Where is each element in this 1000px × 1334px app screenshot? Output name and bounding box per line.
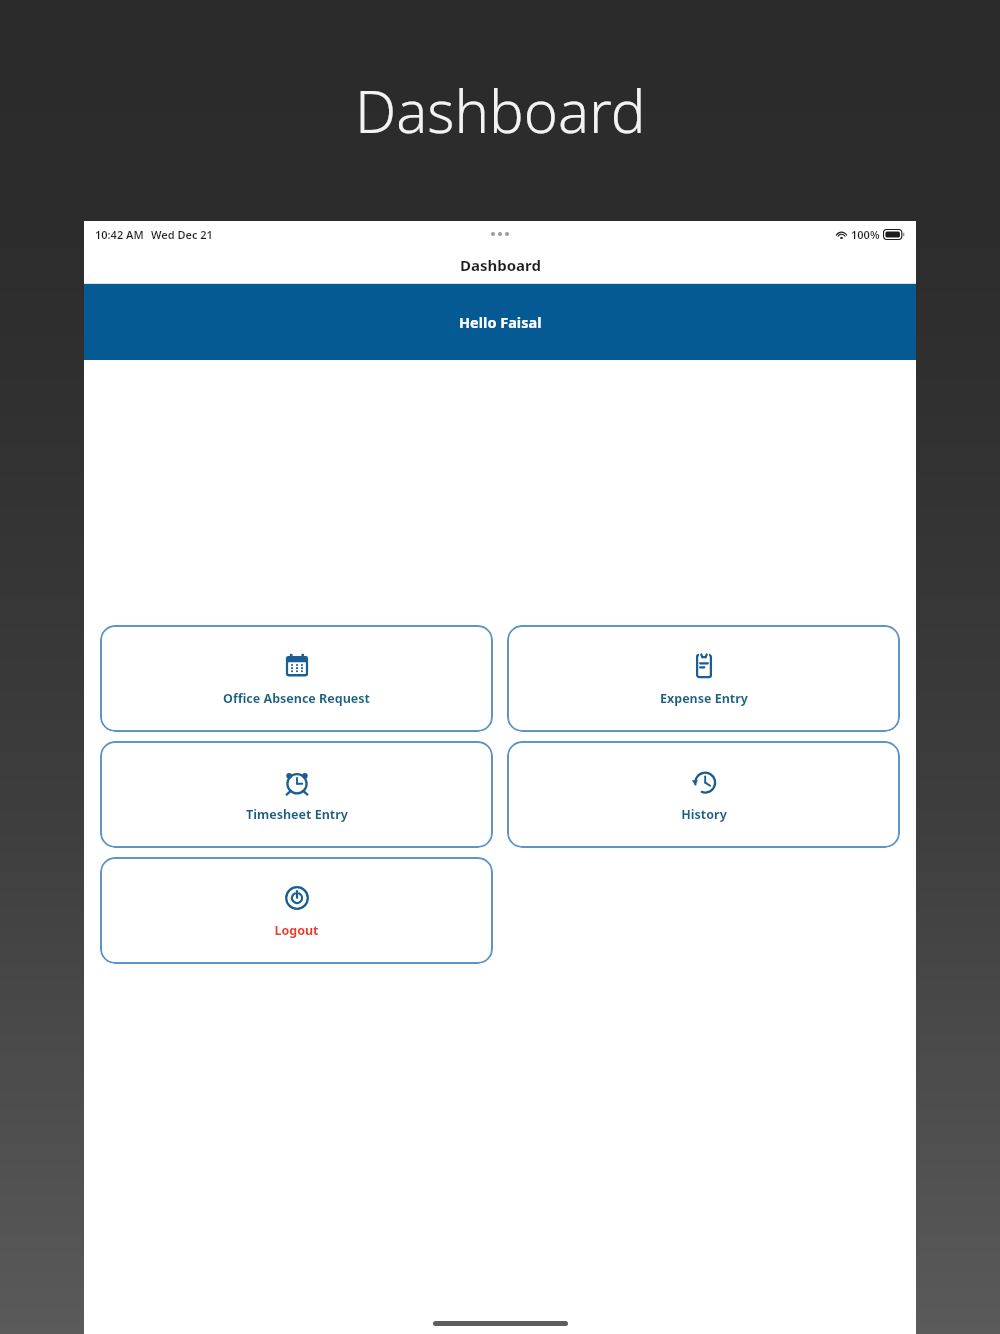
staticText: 10:42 AM	[95, 227, 144, 242]
staticText: Office Absence Request	[223, 690, 370, 707]
staticText: Timesheet Entry	[246, 806, 348, 823]
staticText: Logout	[274, 922, 319, 939]
button[interactable]: Hello Faisal	[84, 284, 916, 360]
staticText: 100%	[851, 227, 880, 242]
staticText: Hello Faisal	[459, 312, 542, 332]
button[interactable]: Expense Entry	[507, 625, 900, 732]
staticText: Dashboard	[355, 71, 646, 150]
staticText: Dashboard	[460, 255, 541, 275]
button[interactable]: History	[507, 741, 900, 848]
staticText: History	[681, 806, 727, 823]
button[interactable]: Logout	[100, 857, 493, 964]
button[interactable]: Office Absence Request	[100, 625, 493, 732]
staticText: Expense Entry	[660, 690, 748, 707]
button[interactable]: Timesheet Entry	[100, 741, 493, 848]
staticText: Wed Dec 21	[151, 227, 213, 242]
